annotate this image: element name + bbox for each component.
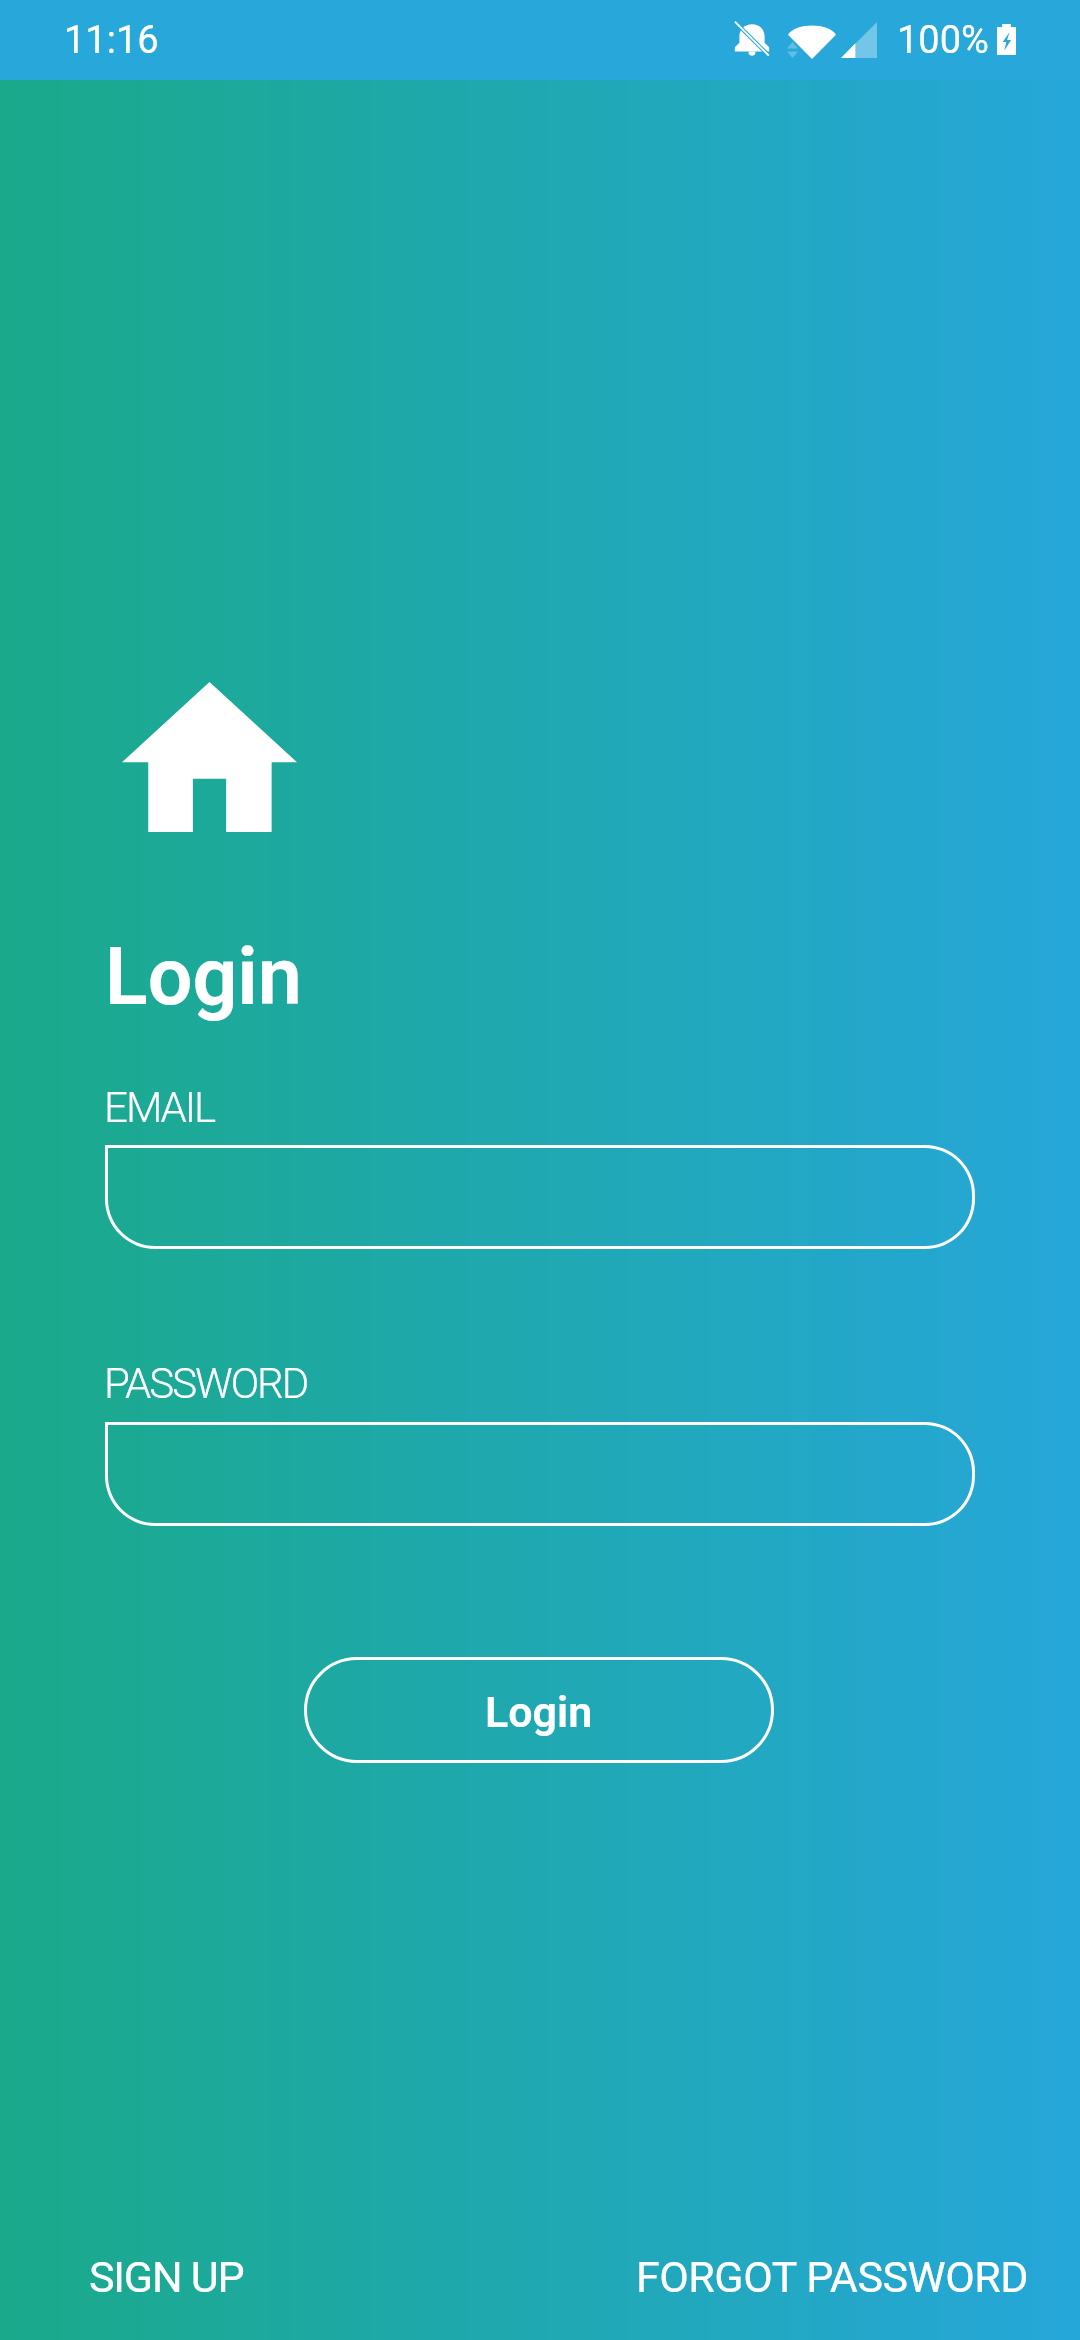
button[interactable]: Home bbox=[122, 682, 297, 832]
staticText: 11:16 bbox=[64, 18, 159, 63]
button[interactable]: Password input field bbox=[105, 1422, 975, 1526]
other: Notifications muted bbox=[731, 19, 773, 61]
staticText: SIGN UP bbox=[89, 2252, 244, 2302]
staticText: Login bbox=[105, 931, 302, 1024]
button[interactable]: FORGOT PASSWORD bbox=[606, 2236, 1058, 2318]
staticText: EMAIL bbox=[104, 1083, 215, 1132]
staticText: Login bbox=[485, 1687, 593, 1737]
staticText: PASSWORD bbox=[104, 1359, 308, 1408]
button[interactable]: Login bbox=[304, 1657, 774, 1763]
staticText: FORGOT PASSWORD bbox=[636, 2252, 1028, 2302]
button[interactable]: SIGN UP bbox=[59, 2236, 274, 2318]
button[interactable]: Email input field bbox=[105, 1145, 975, 1249]
staticText: 100% bbox=[897, 18, 989, 63]
